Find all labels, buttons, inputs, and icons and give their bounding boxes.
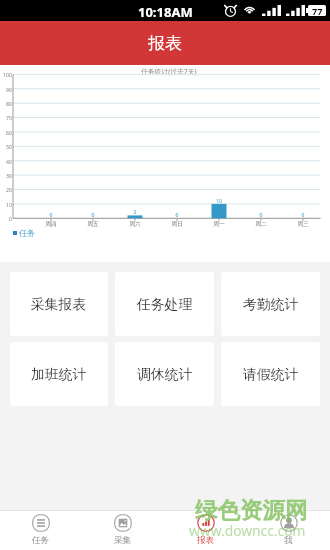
button[interactable]: 采集 bbox=[82, 511, 164, 550]
button[interactable]: 考勤统计 bbox=[221, 272, 320, 336]
staticText: 周二 bbox=[247, 220, 275, 227]
staticText: 20 bbox=[0, 186, 12, 193]
staticText: 0 bbox=[247, 212, 275, 219]
staticText: 40 bbox=[0, 158, 12, 165]
staticText: 周四 bbox=[37, 220, 65, 227]
staticText: www.downcc.com bbox=[189, 521, 306, 540]
staticText: 加班统计 bbox=[31, 366, 87, 383]
staticText: 50 bbox=[0, 143, 12, 150]
staticText: 77 bbox=[312, 5, 323, 16]
staticText: 10:18AM bbox=[138, 3, 193, 21]
button[interactable]: 请假统计 bbox=[221, 342, 320, 406]
staticText: 采集报表 bbox=[31, 296, 87, 313]
staticText: 任务 bbox=[19, 228, 35, 238]
staticText: 80 bbox=[0, 100, 12, 107]
staticText: 周日 bbox=[163, 220, 191, 227]
staticText: 30 bbox=[0, 172, 12, 179]
button[interactable]: 任务 bbox=[0, 511, 82, 550]
button[interactable]: 我 bbox=[247, 511, 330, 550]
staticText: 0 bbox=[79, 212, 107, 219]
staticText: 绿色资源网 bbox=[195, 496, 308, 524]
staticText: 周六 bbox=[121, 220, 149, 227]
staticText: 2 bbox=[121, 209, 149, 216]
staticText: 60 bbox=[0, 129, 12, 136]
staticText: 周五 bbox=[79, 220, 107, 227]
staticText: 周一 bbox=[205, 220, 233, 227]
staticText: 10 bbox=[205, 198, 233, 205]
staticText: 调休统计 bbox=[137, 366, 193, 383]
button[interactable]: 任务处理 bbox=[115, 272, 214, 336]
button[interactable]: 采集报表 bbox=[10, 272, 108, 336]
staticText: 100 bbox=[0, 71, 12, 78]
button[interactable]: 加班统计 bbox=[10, 342, 108, 406]
staticText: 周三 bbox=[289, 220, 317, 227]
staticText: 任务统计(过去7天) bbox=[141, 67, 197, 76]
staticText: 请假统计 bbox=[243, 366, 299, 383]
staticText: 任务 bbox=[32, 535, 50, 546]
staticText: 0 bbox=[163, 212, 191, 219]
staticText: 考勤统计 bbox=[243, 296, 299, 313]
staticText: 0 bbox=[0, 215, 12, 222]
staticText: 90 bbox=[0, 86, 12, 93]
staticText: 任务处理 bbox=[137, 296, 193, 313]
staticText: 我 bbox=[284, 535, 293, 546]
staticText: 采集 bbox=[114, 535, 132, 546]
staticText: 0 bbox=[37, 212, 65, 219]
button[interactable]: 报表 bbox=[164, 511, 247, 550]
staticText: 10 bbox=[0, 201, 12, 208]
staticText: 70 bbox=[0, 114, 12, 121]
staticText: 报表 bbox=[148, 33, 182, 54]
staticText: 报表 bbox=[197, 535, 215, 546]
staticText: 0 bbox=[289, 212, 317, 219]
button[interactable]: 调休统计 bbox=[115, 342, 214, 406]
